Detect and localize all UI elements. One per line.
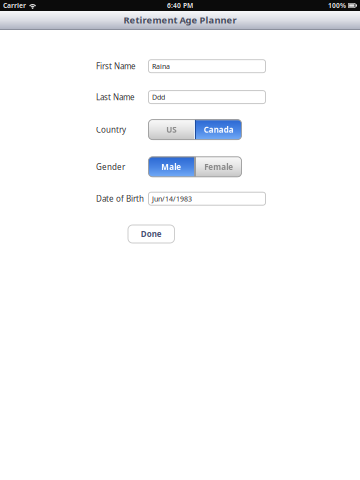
staticText: Female — [204, 161, 233, 172]
button[interactable]: Canada — [196, 120, 241, 140]
button[interactable]: Ddd — [148, 91, 265, 104]
staticText: US — [166, 124, 176, 135]
staticText: Gender — [96, 161, 125, 172]
staticText: 6:40 PM — [167, 1, 193, 10]
staticText: Done — [141, 229, 162, 239]
staticText: Date of Birth — [96, 193, 144, 204]
button[interactable]: Male — [148, 157, 194, 177]
staticText: Raina — [152, 61, 170, 71]
staticText: 100% — [328, 1, 346, 10]
button[interactable]: Done — [128, 225, 174, 243]
staticText: First Name — [96, 61, 136, 71]
staticText: Country — [96, 124, 126, 135]
button[interactable]: Jun/14/1983 — [148, 192, 265, 205]
staticText: Canada — [204, 124, 234, 135]
staticText: Ddd — [152, 92, 165, 102]
staticText: Male — [161, 161, 181, 172]
staticText: Carrier — [3, 1, 26, 10]
button[interactable]: US — [148, 120, 194, 140]
button[interactable]: Raina — [148, 60, 265, 73]
staticText: Retirement Age Planner — [123, 14, 236, 26]
staticText: Last Name — [96, 92, 135, 102]
button[interactable]: Female — [196, 157, 241, 177]
staticText: Jun/14/1983 — [152, 194, 192, 203]
